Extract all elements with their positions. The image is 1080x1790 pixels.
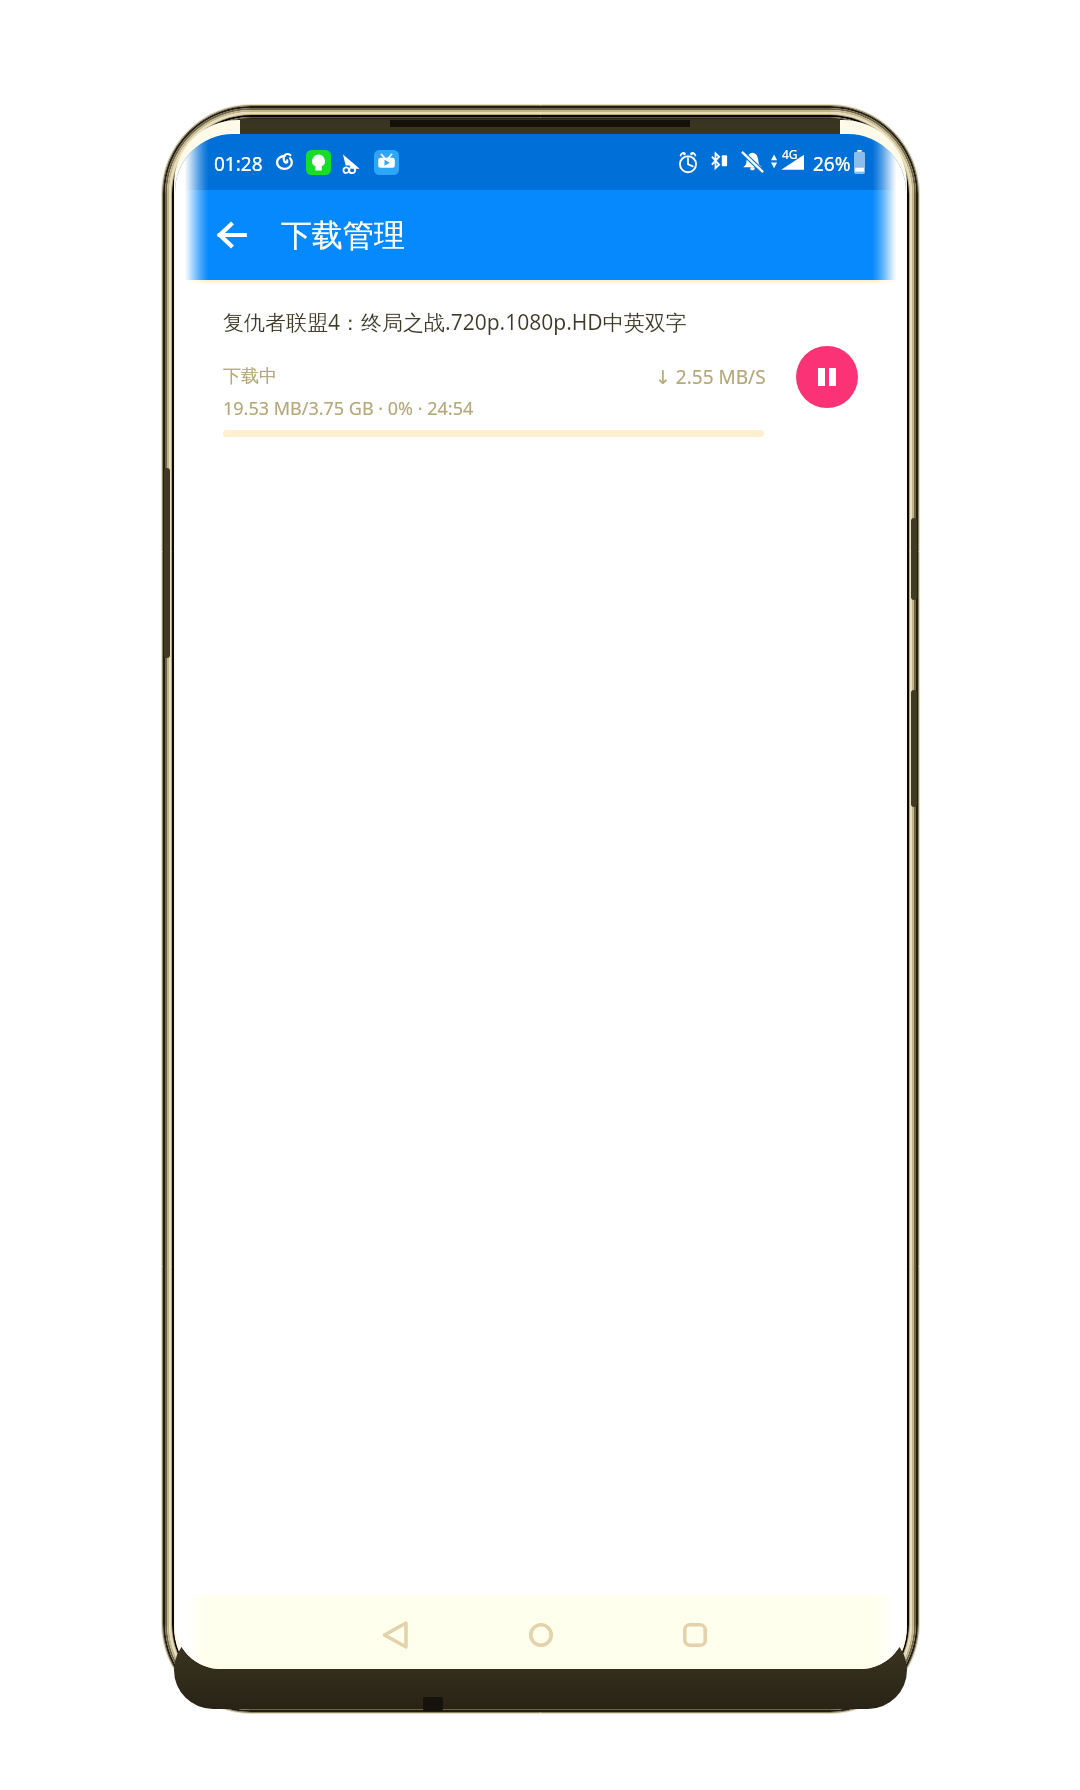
staticText: 01:28 bbox=[214, 151, 263, 177]
button[interactable]: Back bbox=[365, 1607, 425, 1663]
button[interactable]: Home bbox=[511, 1607, 571, 1663]
staticText: 复仇者联盟4：终局之战.720p.1080p.HD中英双字 bbox=[223, 308, 687, 337]
staticText: 4G bbox=[782, 146, 798, 162]
button[interactable]: Recents bbox=[665, 1607, 725, 1663]
staticText: 26% bbox=[813, 151, 851, 177]
staticText: 下载管理 bbox=[281, 216, 405, 255]
button[interactable]: Back bbox=[202, 205, 262, 265]
staticText: 19.53 MB/3.75 GB · 0% · 24:54 bbox=[223, 396, 474, 421]
button[interactable]: Pause download bbox=[796, 346, 858, 408]
staticText: 下载中 bbox=[223, 365, 277, 388]
staticText: ↓ 2.55 MB/S bbox=[655, 364, 766, 390]
